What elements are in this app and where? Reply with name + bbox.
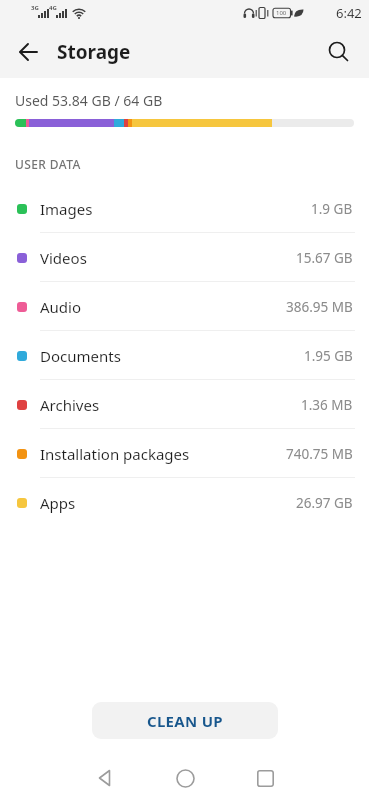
button[interactable]: Apps bbox=[0, 478, 369, 527]
staticText: USER DATA bbox=[15, 156, 81, 172]
staticText: Videos bbox=[40, 248, 87, 268]
staticText: Audio bbox=[40, 297, 82, 317]
staticText: 15.67 GB bbox=[296, 249, 353, 267]
staticText: 386.95 MB bbox=[286, 298, 353, 316]
staticText: 26.97 GB bbox=[296, 494, 353, 512]
staticText: Apps bbox=[40, 493, 76, 513]
button[interactable] bbox=[235, 756, 295, 800]
staticText: Documents bbox=[40, 346, 121, 366]
button[interactable]: Audio bbox=[0, 282, 369, 331]
staticText: 3G bbox=[31, 4, 39, 12]
staticText: 100 bbox=[276, 9, 287, 17]
button[interactable] bbox=[155, 756, 215, 800]
staticText: 1.95 GB bbox=[304, 347, 353, 365]
staticText: Storage bbox=[57, 39, 131, 65]
staticText: Used 53.84 GB / 64 GB bbox=[15, 91, 163, 110]
button[interactable] bbox=[323, 36, 355, 68]
staticText: CLEAN UP bbox=[147, 711, 223, 731]
staticText: 1.9 GB bbox=[311, 200, 353, 218]
staticText: Archives bbox=[40, 395, 100, 415]
button[interactable]: CLEAN UP bbox=[92, 702, 278, 739]
staticText: 6:42 bbox=[336, 4, 362, 22]
staticText: Images bbox=[40, 199, 93, 219]
staticText: 740.75 MB bbox=[286, 445, 353, 463]
button[interactable]: Images bbox=[0, 184, 369, 233]
button[interactable] bbox=[12, 36, 44, 68]
button[interactable] bbox=[75, 756, 135, 800]
staticText: Installation packages bbox=[40, 444, 190, 464]
button[interactable]: Archives bbox=[0, 380, 369, 429]
button[interactable]: Installation packages bbox=[0, 429, 369, 478]
staticText: 4G bbox=[49, 4, 57, 12]
button[interactable]: Videos bbox=[0, 233, 369, 282]
button[interactable]: Documents bbox=[0, 331, 369, 380]
staticText: 1.36 MB bbox=[301, 396, 353, 414]
